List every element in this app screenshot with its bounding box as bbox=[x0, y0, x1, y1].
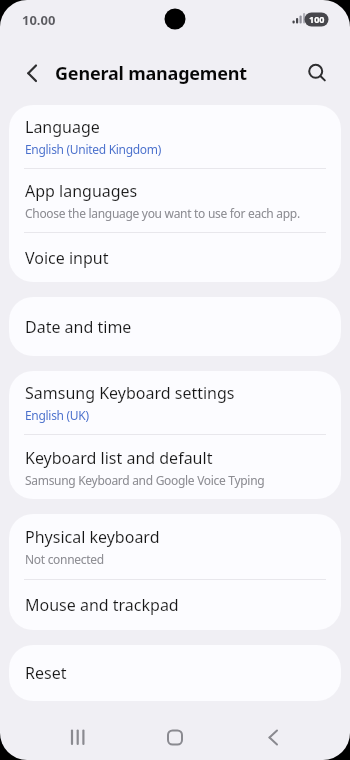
staticText: App languages bbox=[25, 180, 138, 202]
button[interactable]: Date and time bbox=[9, 297, 341, 356]
staticText: 100 bbox=[309, 13, 325, 25]
button[interactable] bbox=[14, 57, 46, 89]
staticText: 10.00 bbox=[22, 11, 56, 29]
staticText: General management bbox=[55, 61, 247, 86]
button[interactable]: Mouse and trackpad bbox=[9, 580, 341, 630]
button[interactable]: Language bbox=[9, 105, 341, 168]
staticText: Samsung Keyboard settings bbox=[25, 382, 235, 404]
button[interactable] bbox=[300, 57, 332, 89]
staticText: Keyboard list and default bbox=[25, 447, 213, 469]
staticText: Not connected bbox=[25, 551, 104, 567]
button[interactable]: Physical keyboard bbox=[9, 514, 341, 579]
staticText: Physical keyboard bbox=[25, 526, 160, 548]
staticText: Date and time bbox=[25, 316, 132, 338]
button[interactable] bbox=[256, 721, 288, 753]
staticText: Voice input bbox=[25, 247, 109, 269]
button[interactable]: Reset bbox=[9, 645, 341, 701]
button[interactable]: App languages bbox=[9, 169, 341, 232]
staticText: Reset bbox=[25, 662, 67, 684]
staticText: English (UK) bbox=[25, 407, 89, 423]
staticText: Mouse and trackpad bbox=[25, 594, 179, 616]
staticText: Samsung Keyboard and Google Voice Typing bbox=[25, 472, 265, 488]
button[interactable]: Voice input bbox=[9, 233, 341, 282]
staticText: English (United Kingdom) bbox=[25, 141, 162, 157]
staticText: Choose the language you want to use for … bbox=[25, 205, 300, 221]
button[interactable] bbox=[62, 721, 94, 753]
button[interactable]: Samsung Keyboard settings bbox=[9, 371, 341, 434]
button[interactable]: Keyboard list and default bbox=[9, 435, 341, 499]
staticText: Language bbox=[25, 116, 100, 138]
button[interactable] bbox=[159, 721, 191, 753]
